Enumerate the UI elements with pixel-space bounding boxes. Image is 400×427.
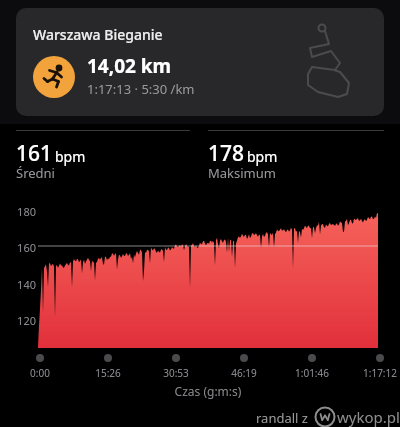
staticText: randall z — [256, 409, 308, 427]
staticText: 140 — [12, 277, 36, 292]
staticText: 180 — [12, 204, 36, 219]
staticText: bpm — [55, 147, 86, 166]
staticText: wykop.pl — [337, 407, 400, 427]
button[interactable]: Warszawa Bieganie — [16, 8, 384, 116]
staticText: bpm — [247, 147, 278, 166]
staticText: Warszawa Bieganie — [33, 25, 163, 44]
staticText: 1:01:46 — [282, 366, 342, 380]
staticText: 46:19 — [214, 366, 274, 380]
staticText: Czas (g:m:s) — [148, 383, 268, 399]
staticText: 160 — [12, 240, 36, 255]
staticText: 161 — [16, 139, 53, 168]
staticText: 178 — [208, 139, 245, 168]
staticText: 120 — [12, 313, 36, 328]
staticText: Maksimum — [208, 164, 276, 182]
staticText: 1:17:12 — [350, 366, 400, 380]
staticText: 14,02 km — [87, 53, 172, 79]
staticText: 1:17:13 · 5:30 /km — [87, 80, 195, 98]
staticText: Średni — [16, 164, 55, 182]
staticText: 0:00 — [10, 366, 70, 380]
staticText: 15:26 — [78, 366, 138, 380]
staticText: 30:53 — [146, 366, 206, 380]
